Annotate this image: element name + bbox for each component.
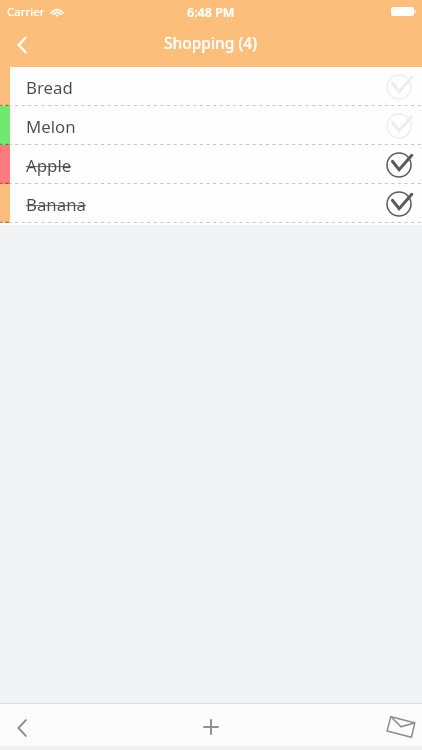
button[interactable]: Mark done [384,111,414,141]
staticText: Carrier [7,4,45,20]
staticText: Apple [26,154,72,177]
staticText: 6:48 PM [187,4,235,21]
button[interactable]: Apple [0,145,422,184]
button[interactable]: Back [0,704,56,746]
staticText: Bread [26,76,73,99]
button[interactable]: Mail [366,704,422,746]
button[interactable]: Back [0,23,44,67]
button[interactable]: Mark not done [384,189,414,219]
button[interactable]: Melon [0,106,422,145]
staticText: Melon [26,115,76,138]
staticText: Shopping (4) [164,32,258,53]
button[interactable]: Banana [0,184,422,223]
button[interactable]: Mark done [384,72,414,102]
button[interactable]: Add item [181,704,241,746]
button[interactable]: Mark not done [384,150,414,180]
staticText: Banana [26,193,86,216]
button[interactable]: Bread [0,67,422,106]
